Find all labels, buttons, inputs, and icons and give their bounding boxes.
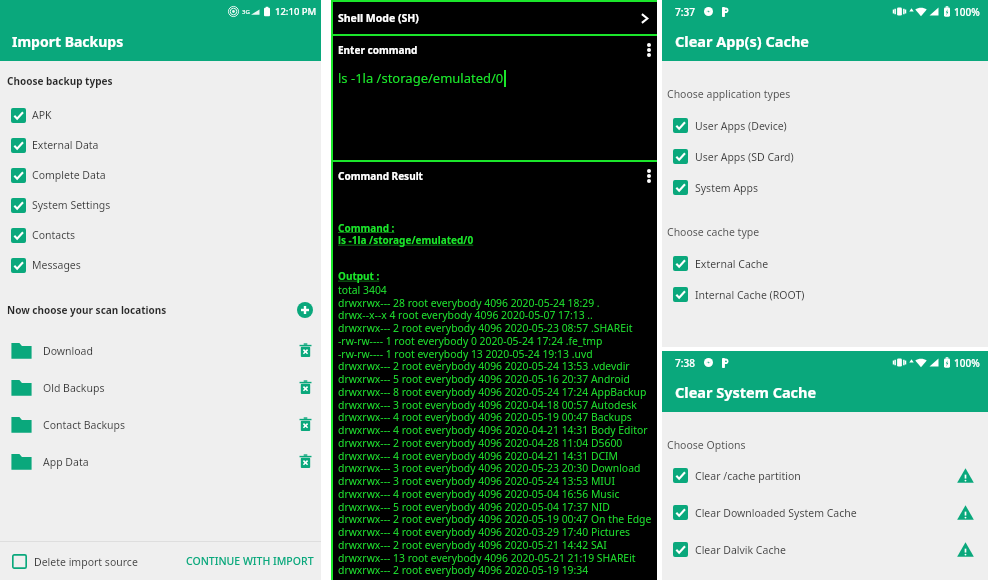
staticText: Clear Dalvik Cache xyxy=(695,543,786,557)
staticText: 12:10 PM xyxy=(275,5,317,18)
staticText: Contacts xyxy=(32,228,76,242)
staticText: User Apps (Device) xyxy=(695,119,787,133)
staticText: drwxrwx--- 4 root everybody 4096 2020-04… xyxy=(338,423,648,437)
staticText: APK xyxy=(32,108,52,122)
button[interactable]: Internal Cache (ROOT) xyxy=(662,279,988,310)
staticText: drwxrwx--- 4 root everybody 4096 2020-03… xyxy=(338,525,630,539)
staticText: External Cache xyxy=(695,257,769,271)
staticText: Choose backup types xyxy=(7,74,113,88)
staticText: 3G xyxy=(242,8,250,16)
staticText: drwxrwx--- 5 root everybody 4096 2020-05… xyxy=(338,372,630,386)
staticText: drwxrwx--- 3 root everybody 4096 2020-05… xyxy=(338,474,615,488)
button[interactable]: Old Backups xyxy=(0,369,321,406)
button[interactable]: Warning xyxy=(957,541,974,558)
button[interactable]: CONTINUE WITH IMPORT xyxy=(186,554,314,568)
staticText: ls -1la /storage/emulated/0 xyxy=(338,69,504,87)
staticText: drwxrwx--- 4 root everybody 4096 2020-05… xyxy=(338,410,632,424)
staticText: Choose application types xyxy=(667,87,791,101)
staticText: Complete Data xyxy=(32,168,106,182)
staticText: drwx--x--x 4 root everybody 4096 2020-05… xyxy=(338,308,593,322)
button[interactable]: Clear Dalvik Cache xyxy=(662,531,988,568)
staticText: Clear System Cache xyxy=(675,382,817,402)
button[interactable]: Complete Data xyxy=(0,160,321,190)
staticText: Clear Downloaded System Cache xyxy=(695,506,857,520)
staticText: Command : ls -1la /storage/emulated/0 xyxy=(338,221,474,247)
staticText: Choose cache type xyxy=(667,225,760,239)
button[interactable]: Warning xyxy=(957,467,974,484)
button[interactable]: Messages xyxy=(0,250,321,280)
button[interactable]: User Apps (SD Card) xyxy=(662,141,988,172)
staticText: drwxrwx--- 8 root everybody 4096 2020-05… xyxy=(338,385,647,399)
staticText: System Apps xyxy=(695,181,759,195)
button[interactable]: App Data xyxy=(0,443,321,480)
staticText: drwxrwx--- 3 root everybody 4096 2020-05… xyxy=(338,461,641,475)
staticText: Output : xyxy=(338,269,380,283)
staticText: Now choose your scan locations xyxy=(7,303,167,317)
staticText: Download xyxy=(43,344,93,358)
button[interactable]: Clear Downloaded System Cache xyxy=(662,494,988,531)
staticText: Old Backups xyxy=(43,381,105,395)
staticText: 7:38 xyxy=(675,356,695,370)
button[interactable]: System Settings xyxy=(0,190,321,220)
staticText: 100% xyxy=(954,356,980,370)
staticText: drwxrwx--- 5 root everybody 4096 2020-05… xyxy=(338,500,610,514)
staticText: drwxrwx--- 2 root everybody 4096 2020-05… xyxy=(338,359,630,373)
staticText: Choose Options xyxy=(667,438,746,452)
button[interactable]: Warning xyxy=(957,504,974,521)
staticText: Internal Cache (ROOT) xyxy=(695,288,805,302)
button[interactable]: Remove Old Backups xyxy=(299,380,312,395)
button[interactable]: Result options xyxy=(647,169,651,183)
button[interactable]: External Cache xyxy=(662,248,988,279)
button[interactable]: Download xyxy=(0,332,321,369)
button[interactable]: Remove Download xyxy=(299,343,312,358)
button[interactable]: Shell Mode (SH) xyxy=(333,2,657,34)
button[interactable]: Contact Backups xyxy=(0,406,321,443)
button[interactable]: Remove App Data xyxy=(299,454,312,469)
button[interactable]: Contacts xyxy=(0,220,321,250)
button[interactable]: System Apps xyxy=(662,172,988,203)
staticText: Enter command xyxy=(338,43,418,57)
staticText: External Data xyxy=(32,138,99,152)
button[interactable]: More options xyxy=(647,43,651,57)
staticText: System Settings xyxy=(32,198,111,212)
staticText: App Data xyxy=(43,455,89,469)
staticText: 7:37 xyxy=(675,5,695,19)
button[interactable]: Delete import source xyxy=(12,554,138,569)
staticText: drwxrwx--- 4 root everybody 4096 2020-04… xyxy=(338,449,619,463)
staticText: 100% xyxy=(954,5,980,19)
staticText: Messages xyxy=(32,258,81,272)
staticText: Shell Mode (SH) xyxy=(338,11,419,25)
staticText: Contact Backups xyxy=(43,418,126,432)
staticText: drwxrwx--- 2 root everybody 4096 2020-05… xyxy=(338,538,607,552)
staticText: drwxrwx--- 3 root everybody 4096 2020-04… xyxy=(338,398,637,412)
staticText: drwxrwx--- 2 root everybody 4096 2020-05… xyxy=(338,321,633,335)
staticText: drwxrwx--- 28 root everybody 4096 2020-0… xyxy=(338,296,600,310)
staticText: drwxrwx--- 13 root everybody 4096 2020-0… xyxy=(338,551,636,565)
staticText: -rw-rw---- 1 root everybody 13 2020-05-2… xyxy=(338,347,593,361)
staticText: drwxrwx--- 2 root everybody 4096 2020-04… xyxy=(338,436,623,450)
staticText: Command Result xyxy=(338,169,423,183)
button[interactable]: Clear /cache partition xyxy=(662,457,988,494)
button[interactable]: Add location xyxy=(297,302,313,318)
staticText: total 3404 xyxy=(338,283,387,297)
staticText: drwxrwx--- 2 root everybody 4096 2020-05… xyxy=(338,563,589,577)
button[interactable]: User Apps (Device) xyxy=(662,110,988,141)
button[interactable]: Remove Contact Backups xyxy=(299,417,312,432)
staticText: Clear App(s) Cache xyxy=(675,31,810,51)
button[interactable]: APK xyxy=(0,100,321,130)
staticText: drwxrwx--- 4 root everybody 4096 2020-05… xyxy=(338,487,620,501)
button[interactable]: External Data xyxy=(0,130,321,160)
staticText: Delete import source xyxy=(34,555,138,569)
staticText: -rw-rw---- 1 root everybody 0 2020-05-24… xyxy=(338,334,603,348)
staticText: User Apps (SD Card) xyxy=(695,150,794,164)
staticText: Clear /cache partition xyxy=(695,469,801,483)
staticText: CONTINUE WITH IMPORT xyxy=(186,554,314,568)
staticText: Import Backups xyxy=(12,32,124,51)
staticText: drwxrwx--- 2 root everybody 4096 2020-05… xyxy=(338,512,651,526)
